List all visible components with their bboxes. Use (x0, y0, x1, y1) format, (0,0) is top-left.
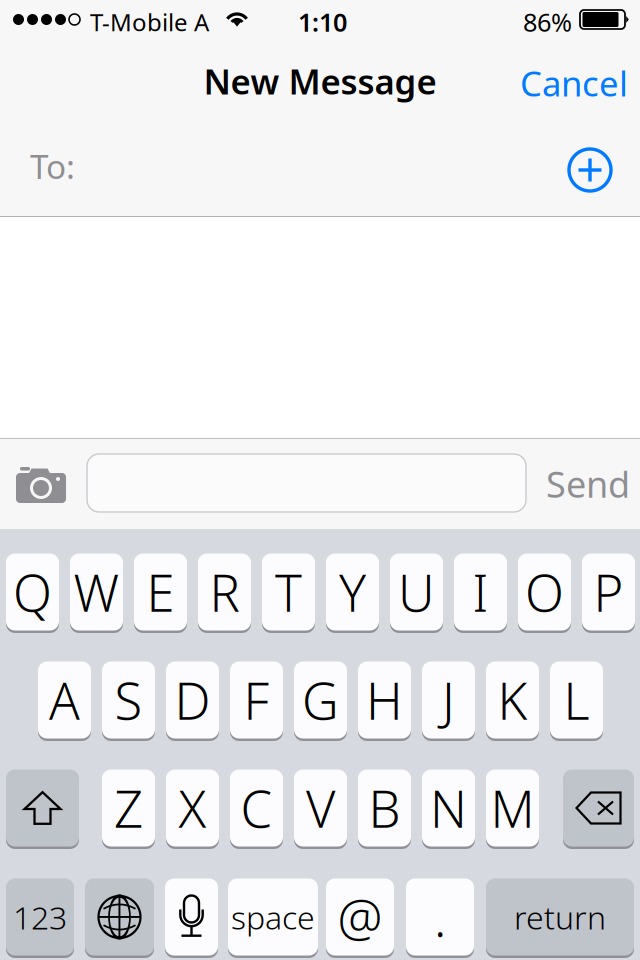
button[interactable]: space (228, 877, 318, 957)
staticText: 86% (523, 5, 572, 39)
staticText: Cancel (520, 60, 628, 106)
staticText: New Message (203, 58, 436, 104)
button[interactable]: B (358, 768, 411, 848)
button[interactable]: . (406, 877, 474, 957)
button[interactable]: J (422, 660, 475, 740)
staticText: L (563, 666, 589, 734)
button[interactable]: R (198, 552, 251, 632)
button[interactable]: @ (326, 877, 394, 957)
staticText: T (275, 558, 302, 626)
staticText: J (442, 666, 455, 734)
staticText: 123 (13, 896, 67, 938)
button[interactable]: I (454, 552, 507, 632)
staticText: U (398, 558, 435, 626)
button[interactable]: H (358, 660, 411, 740)
staticText: 1:10 (298, 5, 347, 39)
staticText: Z (114, 774, 143, 842)
button[interactable]: P (582, 552, 635, 632)
staticText: H (366, 666, 403, 734)
staticText: Send (546, 460, 630, 508)
staticText: B (368, 774, 400, 842)
staticText: W (73, 558, 119, 626)
button[interactable]: Take photo (16, 465, 66, 503)
staticText: V (306, 774, 335, 842)
button[interactable]: X (166, 768, 219, 848)
button[interactable] (6, 768, 79, 848)
staticText: E (146, 558, 174, 626)
staticText: P (593, 558, 623, 626)
staticText: return (514, 896, 606, 938)
staticText: X (178, 774, 206, 842)
button[interactable]: K (486, 660, 539, 740)
button[interactable] (165, 877, 218, 957)
staticText: M (490, 774, 534, 842)
staticText: C (240, 774, 272, 842)
button[interactable]: 123 (6, 877, 74, 957)
button[interactable]: M (486, 768, 539, 848)
button[interactable]: Q (6, 552, 59, 632)
staticText: G (302, 666, 339, 734)
staticText: Y (339, 558, 366, 626)
button[interactable]: U (390, 552, 443, 632)
staticText: T-Mobile A (90, 6, 209, 38)
button[interactable]: D (166, 660, 219, 740)
button[interactable]: A (38, 660, 91, 740)
button[interactable]: Add contact (558, 138, 622, 202)
button[interactable]: T (262, 552, 315, 632)
staticText: D (174, 666, 210, 734)
staticText: I (472, 558, 488, 626)
staticText: A (49, 666, 80, 734)
staticText: @ (337, 883, 382, 951)
button[interactable]: E (134, 552, 187, 632)
staticText: S (114, 666, 142, 734)
button[interactable]: W (70, 552, 123, 632)
button[interactable] (563, 768, 634, 848)
staticText: . (434, 883, 446, 951)
button[interactable]: G (294, 660, 347, 740)
button[interactable] (85, 877, 154, 957)
button[interactable]: Y (326, 552, 379, 632)
staticText: N (430, 774, 467, 842)
button[interactable]: Cancel (510, 54, 628, 112)
button[interactable]: F (230, 660, 283, 740)
staticText: Q (13, 558, 52, 626)
staticText: space (231, 896, 315, 938)
button[interactable]: N (422, 768, 475, 848)
button[interactable]: L (550, 660, 603, 740)
button[interactable]: Z (102, 768, 155, 848)
button[interactable]: S (102, 660, 155, 740)
button[interactable]: V (294, 768, 347, 848)
button[interactable]: C (230, 768, 283, 848)
staticText: O (525, 558, 564, 626)
staticText: F (243, 666, 269, 734)
staticText: R (209, 558, 239, 626)
staticText: To: (30, 144, 75, 188)
button[interactable]: Send (546, 460, 630, 508)
button[interactable]: return (486, 877, 634, 957)
staticText: K (497, 666, 527, 734)
button[interactable]: O (518, 552, 571, 632)
